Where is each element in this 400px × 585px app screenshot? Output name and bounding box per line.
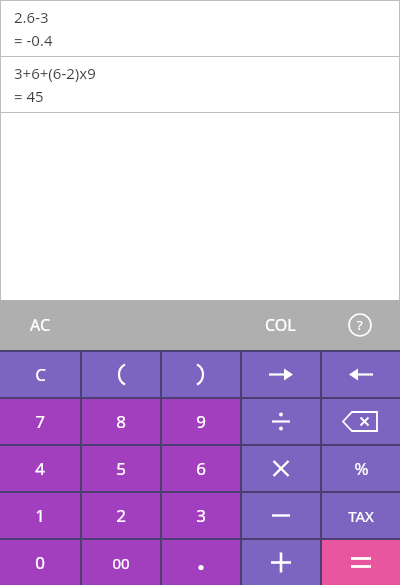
staticText: = 45 [14,86,44,106]
button[interactable]: Help [320,300,400,350]
staticText: 3 [196,504,206,527]
button[interactable]: 0 [0,540,80,585]
staticText: 8 [116,410,126,433]
staticText: ? [357,316,363,334]
staticText: 7 [35,410,45,433]
button[interactable]: Decimal point [162,540,240,585]
button[interactable]: Move left [242,352,320,397]
staticText: COL [265,314,296,336]
button[interactable]: 3 [162,493,240,538]
button[interactable]: C [0,352,80,397]
button[interactable]: Move right [322,352,400,397]
staticText: 4 [35,457,45,480]
button[interactable]: Multiply [242,446,320,491]
button[interactable]: 1 [0,493,80,538]
staticText: 2 [116,504,126,527]
staticText: TAX [348,506,374,526]
button[interactable]: TAX [322,493,400,538]
staticText: % [354,457,369,480]
button[interactable]: 2.6-3 [0,1,400,56]
button[interactable]: 9 [162,399,240,444]
staticText: 6 [196,457,206,480]
button[interactable]: COL [240,300,320,350]
button[interactable]: 3+6+(6-2)x9 [0,57,400,112]
button[interactable]: Backspace [322,399,400,444]
button[interactable]: Plus [242,540,320,585]
button[interactable]: 00 [82,540,160,585]
staticText: C [35,363,46,386]
staticText: 3+6+(6-2)x9 [14,63,96,83]
button[interactable]: AC [0,300,80,350]
button[interactable]: 8 [82,399,160,444]
button[interactable]: 2 [82,493,160,538]
button[interactable]: % [322,446,400,491]
button[interactable]: 4 [0,446,80,491]
button[interactable]: Close parenthesis [162,352,240,397]
staticText: 0 [35,551,45,574]
staticText: 5 [116,457,126,480]
button[interactable]: Divide [242,399,320,444]
button[interactable]: 5 [82,446,160,491]
button[interactable]: Minus [242,493,320,538]
staticText: 9 [196,410,206,433]
button[interactable]: 7 [0,399,80,444]
button[interactable]: 6 [162,446,240,491]
staticText: 1 [35,504,45,527]
staticText: AC [30,314,51,336]
staticText: 2.6-3 [14,7,49,27]
button[interactable]: Equals [322,540,400,585]
button[interactable]: Open parenthesis [82,352,160,397]
staticText: 00 [112,553,130,573]
staticText: = -0.4 [14,30,53,50]
